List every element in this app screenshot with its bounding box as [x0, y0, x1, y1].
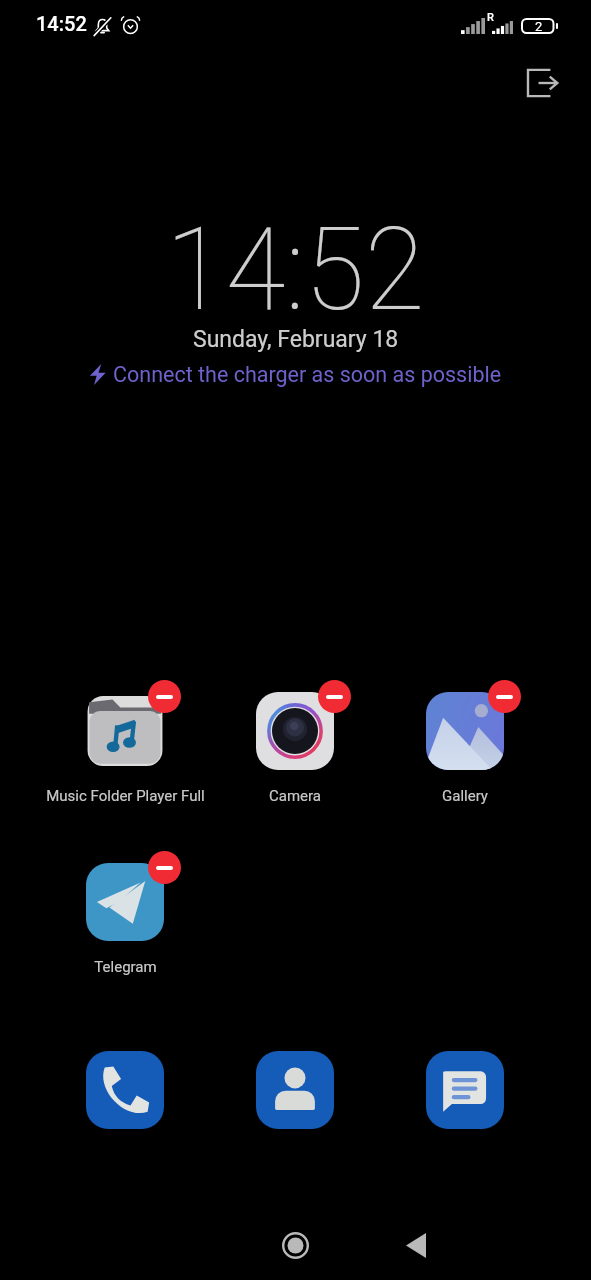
button[interactable]: Remove Music Folder Player Full [148, 680, 181, 713]
button[interactable]: Home [267, 1217, 323, 1273]
staticText: Connect the charger as soon as possible [113, 362, 502, 387]
button[interactable]: Back [388, 1217, 444, 1273]
staticText: Gallery [442, 787, 488, 805]
staticText: Telegram [94, 958, 157, 976]
button[interactable]: Exit edit mode [518, 59, 566, 107]
staticText: 14:52 [36, 12, 87, 35]
button[interactable]: Remove Gallery [385, 682, 545, 806]
staticText: Music Folder Player Full [46, 787, 205, 805]
button[interactable]: Remove Telegram [45, 853, 205, 977]
button[interactable]: Remove Gallery [488, 680, 521, 713]
staticText: Camera [269, 787, 321, 805]
staticText: 14:52 [166, 202, 425, 337]
button[interactable]: Remove Camera [318, 680, 351, 713]
button[interactable]: Messages [417, 1042, 513, 1138]
staticText: R [487, 11, 494, 24]
staticText: Sunday, February 18 [193, 326, 399, 353]
button[interactable]: Contacts [247, 1042, 343, 1138]
staticText: 2 [535, 19, 543, 34]
button[interactable]: Phone [77, 1042, 173, 1138]
button[interactable]: Remove Music Folder Player Full [45, 682, 205, 806]
button[interactable]: Remove Camera [215, 682, 375, 806]
button[interactable]: Remove Telegram [148, 851, 181, 884]
